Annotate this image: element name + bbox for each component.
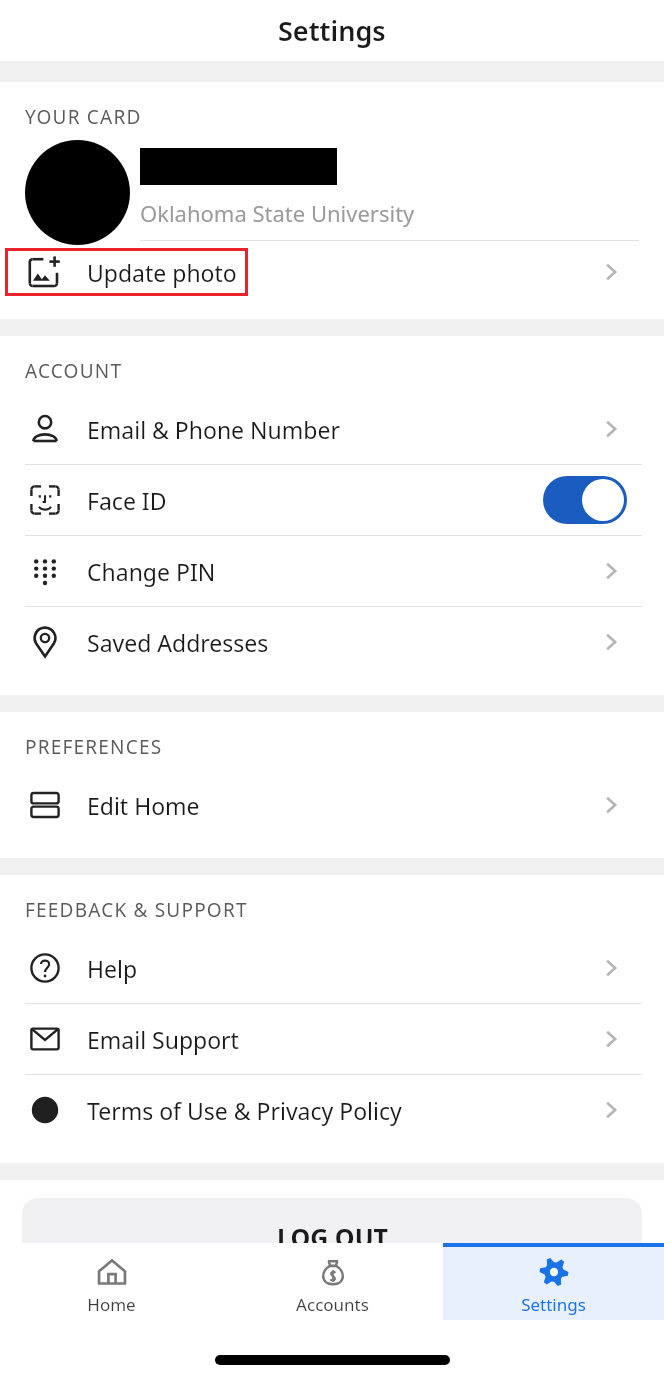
button[interactable]: Change PIN	[0, 536, 664, 606]
button[interactable]: Terms of Use & Privacy Policy	[0, 1075, 664, 1145]
button[interactable]: Edit Home	[0, 770, 664, 840]
staticText: YOUR CARD	[25, 104, 142, 130]
button[interactable]: Saved Addresses	[0, 607, 664, 677]
staticText: Oklahoma State University	[140, 198, 415, 228]
button[interactable]: Update photo	[0, 247, 664, 297]
button[interactable]: Settings	[443, 1243, 664, 1320]
button[interactable]: Email Support	[0, 1004, 664, 1074]
button[interactable]: Home	[0, 1243, 222, 1320]
staticText: Edit Home	[87, 790, 200, 821]
button[interactable]: Email & Phone Number	[0, 394, 664, 464]
button[interactable]: Accounts	[222, 1243, 443, 1320]
staticText: LOG OUT	[277, 1220, 388, 1254]
button[interactable]: Face ID	[0, 465, 664, 535]
staticText: Accounts	[296, 1293, 369, 1316]
staticText: FEEDBACK & SUPPORT	[25, 897, 248, 923]
staticText: Settings	[521, 1293, 586, 1316]
staticText: Email & Phone Number	[87, 414, 340, 445]
staticText: Update photo	[87, 257, 237, 288]
button[interactable]: LOG OUT	[22, 1198, 642, 1293]
staticText: Email Support	[87, 1024, 239, 1055]
staticText: PREFERENCES	[25, 734, 163, 760]
staticText: Change PIN	[87, 556, 216, 587]
staticText: Help	[87, 953, 138, 984]
staticText: Terms of Use & Privacy Policy	[87, 1095, 402, 1126]
button[interactable]: Help	[0, 933, 664, 1003]
staticText: Saved Addresses	[87, 627, 269, 658]
staticText: ACCOUNT	[25, 358, 123, 384]
staticText: Face ID	[87, 485, 167, 516]
button[interactable]: Face ID toggle, on	[543, 476, 627, 524]
staticText: Settings	[278, 12, 386, 49]
staticText: Home	[87, 1293, 136, 1316]
